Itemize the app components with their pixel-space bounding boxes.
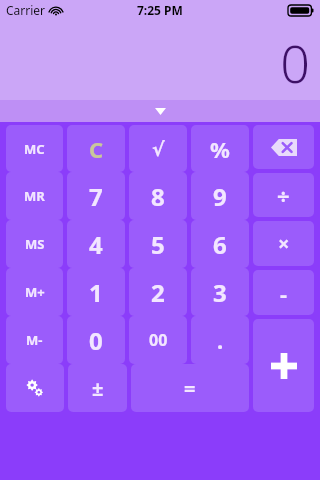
staticText: 5 <box>151 228 165 261</box>
staticText: C <box>89 134 104 164</box>
staticText: 2 <box>151 276 165 309</box>
button[interactable]: 0 <box>67 316 125 364</box>
staticText: 9 <box>213 180 227 213</box>
button[interactable]: C <box>67 125 125 172</box>
staticText: MC <box>24 140 45 158</box>
staticText: × <box>278 230 290 257</box>
staticText: = <box>184 375 196 402</box>
staticText: . <box>217 325 224 355</box>
button[interactable]: ÷ <box>253 173 314 217</box>
button[interactable]: 9 <box>191 172 249 220</box>
button[interactable]: 2 <box>129 268 187 316</box>
staticText: 4 <box>89 228 103 261</box>
staticText: ± <box>92 375 104 402</box>
button[interactable]: Expand history <box>0 100 320 122</box>
staticText: 1 <box>89 276 103 309</box>
staticText: √ <box>152 138 165 160</box>
staticText: ÷ <box>277 180 290 210</box>
button[interactable]: 8 <box>129 172 187 220</box>
button[interactable]: 5 <box>129 220 187 268</box>
button[interactable]: 7 <box>67 172 125 220</box>
button[interactable]: = <box>131 364 249 412</box>
button[interactable]: √ <box>129 125 187 172</box>
staticText: M+ <box>25 283 45 301</box>
staticText: % <box>210 134 230 164</box>
staticText: 00 <box>149 329 168 351</box>
button[interactable]: MC <box>6 125 63 172</box>
button[interactable]: 3 <box>191 268 249 316</box>
staticText: 7 <box>89 180 103 213</box>
staticText: 3 <box>213 276 227 309</box>
button[interactable]: . <box>191 316 249 364</box>
staticText: 8 <box>151 180 165 213</box>
button[interactable]: Plus <box>253 319 314 412</box>
button[interactable]: 00 <box>129 316 187 364</box>
button[interactable]: M- <box>6 316 63 364</box>
staticText: MR <box>24 187 45 205</box>
button[interactable]: ± <box>68 364 127 412</box>
staticText: M- <box>26 331 43 349</box>
staticText: 0 <box>280 27 310 98</box>
button[interactable]: 4 <box>67 220 125 268</box>
staticText: 7:25 PM <box>137 2 183 18</box>
button[interactable]: % <box>191 125 249 172</box>
button[interactable]: 6 <box>191 220 249 268</box>
staticText: 6 <box>213 228 227 261</box>
button[interactable]: Backspace <box>253 125 314 169</box>
button[interactable]: MS <box>6 220 63 268</box>
button[interactable]: Settings <box>6 364 64 412</box>
button[interactable]: MR <box>6 172 63 220</box>
staticText: - <box>280 278 288 308</box>
staticText: 0 <box>89 324 103 357</box>
button[interactable]: M+ <box>6 268 63 316</box>
button[interactable]: × <box>253 221 314 266</box>
button[interactable]: 1 <box>67 268 125 316</box>
staticText: Carrier <box>6 2 46 18</box>
button[interactable]: - <box>253 270 314 315</box>
staticText: MS <box>25 235 45 253</box>
